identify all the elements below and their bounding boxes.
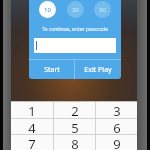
staticText: 2 (71, 102, 79, 118)
button[interactable]: 4 (11, 119, 53, 134)
staticText: 3 (113, 102, 121, 118)
staticText: 4 (28, 119, 36, 134)
button[interactable]: 2 (54, 102, 95, 118)
button[interactable]: Start (29, 60, 74, 79)
button[interactable]: 9 (96, 135, 137, 150)
button[interactable]: 10 (39, 1, 56, 18)
button[interactable]: Exit Play (75, 60, 121, 79)
staticText: 6 (113, 119, 121, 134)
staticText: 10 (44, 6, 51, 14)
staticText: 9 (113, 135, 121, 150)
button[interactable] (34, 38, 116, 53)
staticText: 30 (99, 6, 106, 14)
button[interactable]: 30 (94, 1, 111, 18)
staticText: 7 (28, 135, 36, 150)
staticText: 1 (28, 102, 36, 118)
staticText: 20 (72, 6, 79, 14)
button[interactable]: 5 (54, 119, 95, 134)
staticText: 8 (71, 135, 79, 150)
button[interactable]: 6 (96, 119, 137, 134)
button[interactable]: 8 (54, 135, 95, 150)
staticText: 5 (71, 119, 79, 134)
staticText: To continue, enter passcode (29, 26, 121, 33)
staticText: Exit Play (84, 65, 112, 75)
button[interactable]: 1 (11, 102, 53, 118)
button[interactable]: 20 (67, 1, 84, 18)
button[interactable]: 3 (96, 102, 137, 118)
button[interactable]: 7 (11, 135, 53, 150)
staticText: Start (44, 65, 60, 75)
